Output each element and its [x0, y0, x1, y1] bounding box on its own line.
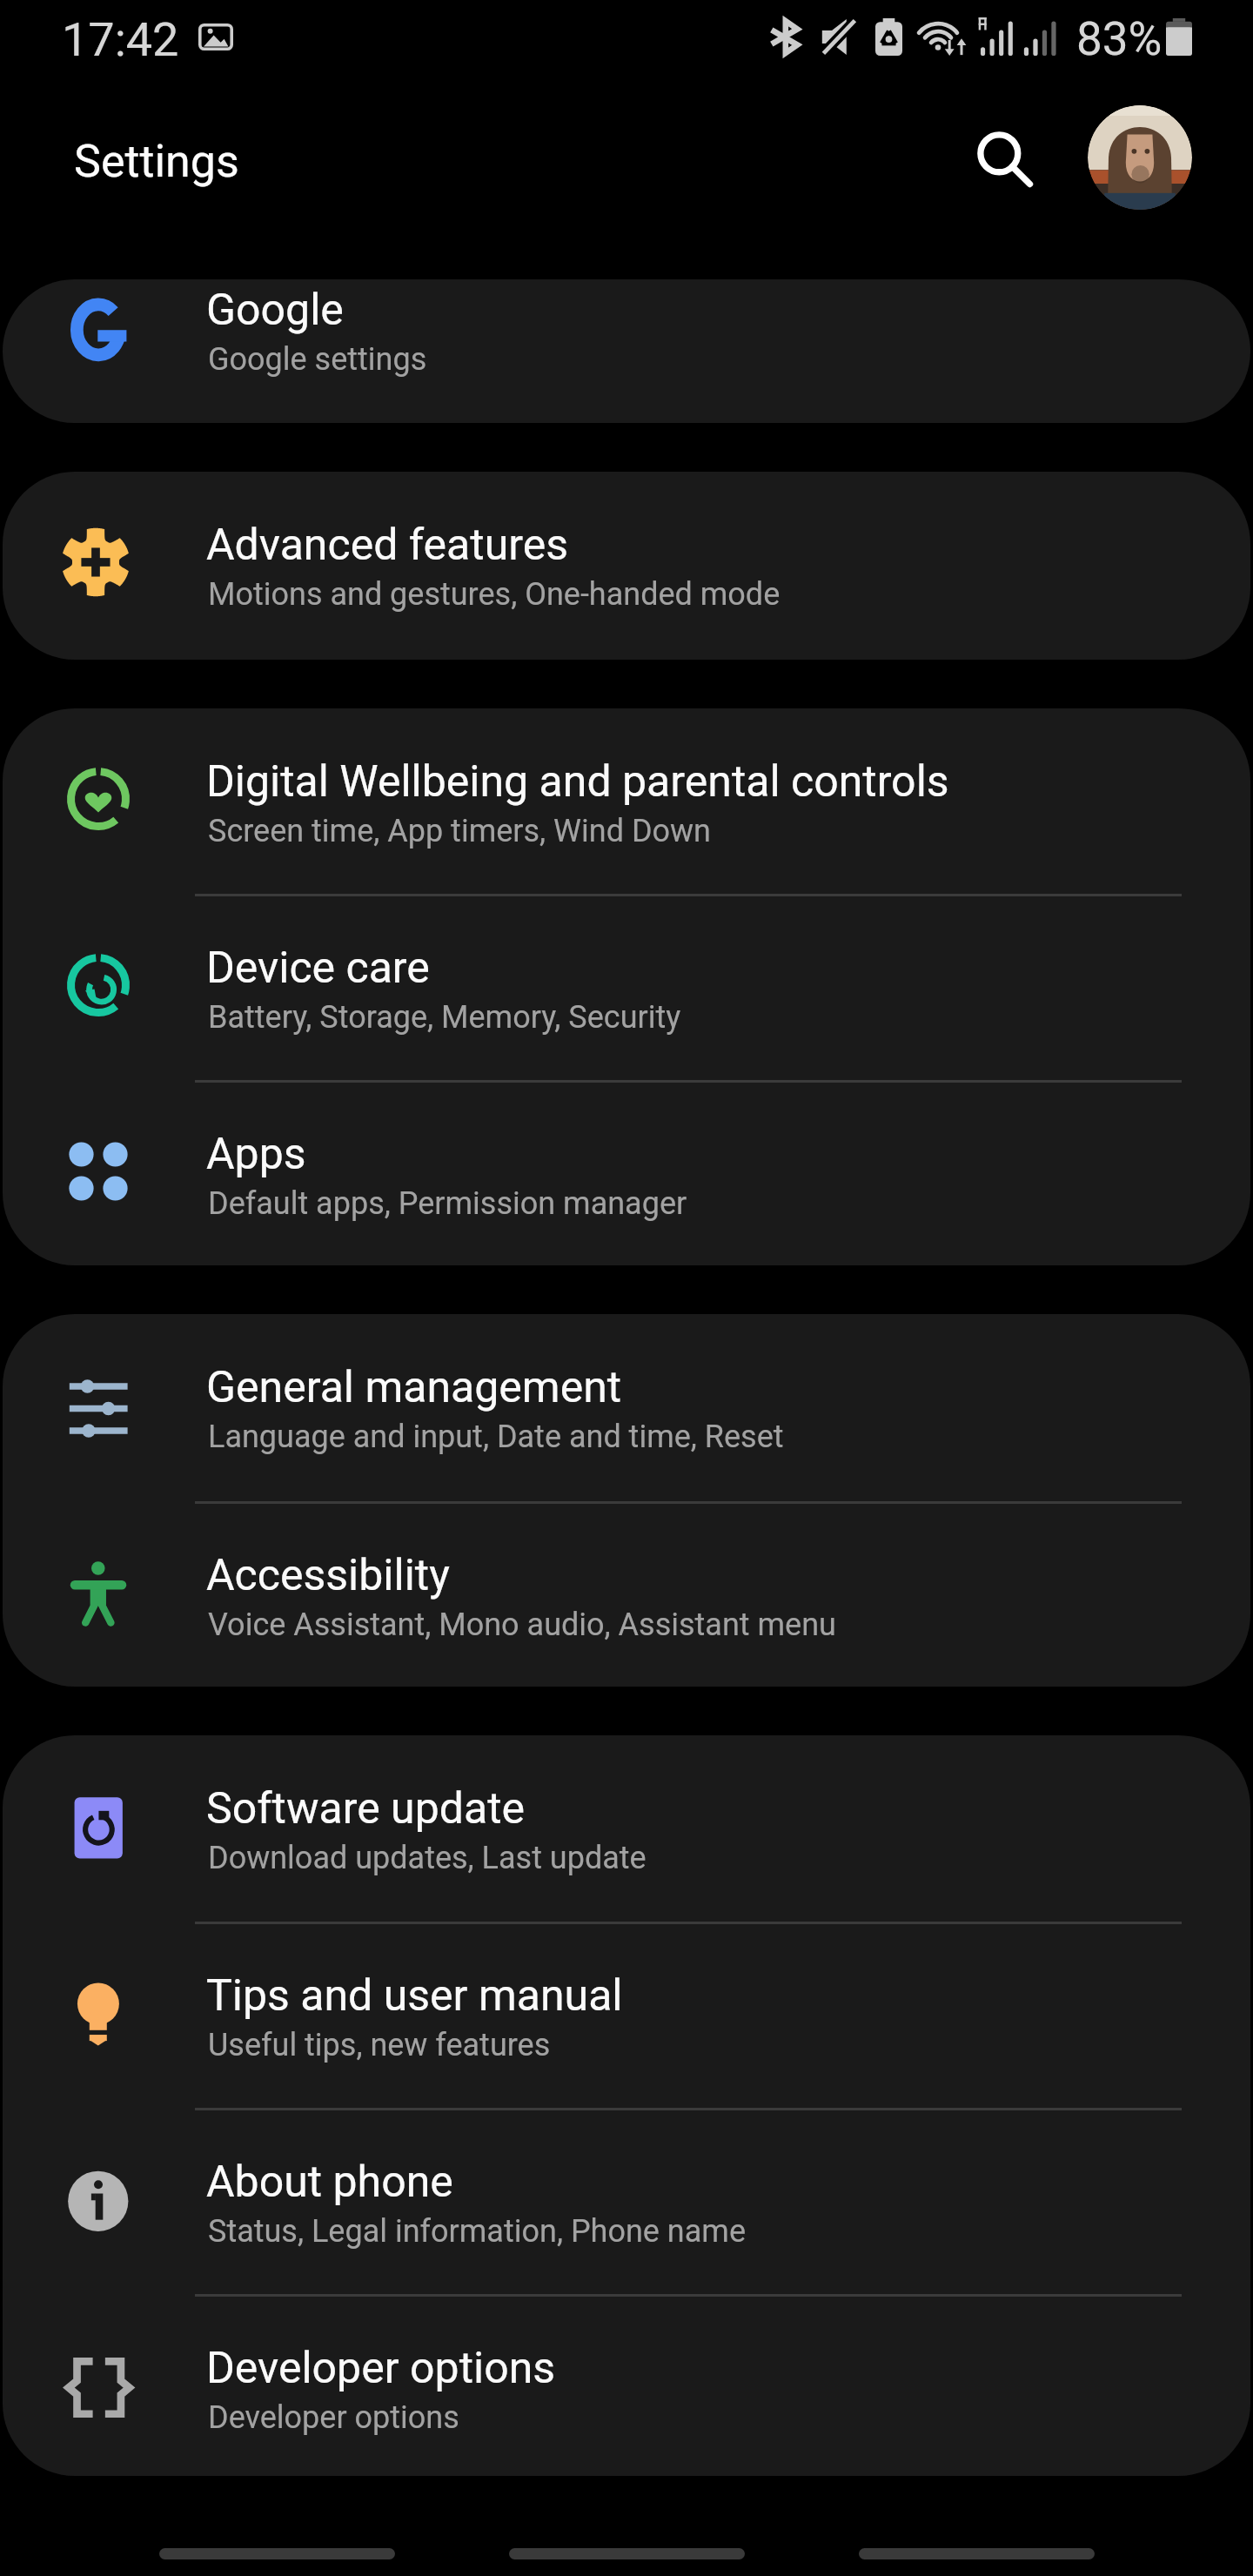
button[interactable]: Search [955, 109, 1057, 211]
button[interactable]: Home [479, 2489, 774, 2576]
button[interactable]: Software update [3, 1735, 1250, 1922]
staticText: Default apps, Permission manager [208, 1185, 687, 1222]
button[interactable]: Recent apps [129, 2489, 425, 2576]
button[interactable]: Account [1088, 105, 1192, 210]
staticText: Useful tips, new features [208, 2027, 551, 2063]
staticText: Developer options [206, 2343, 556, 2394]
staticText: Language and input, Date and time, Reset [208, 1419, 784, 1455]
button[interactable]: Device care [3, 895, 1250, 1081]
staticText: Voice Assistant, Mono audio, Assistant m… [208, 1607, 836, 1643]
button[interactable]: Advanced features [3, 472, 1250, 660]
staticText: Download updates, Last update [208, 1840, 647, 1876]
staticText: Battery, Storage, Memory, Security [208, 999, 681, 1036]
staticText: Google [206, 285, 344, 336]
button[interactable]: Apps [3, 1081, 1250, 1265]
staticText: 83% [1076, 12, 1163, 66]
button[interactable]: General management [3, 1314, 1250, 1502]
staticText: Google settings [208, 341, 427, 378]
button[interactable]: Accessibility [3, 1502, 1250, 1687]
button[interactable]: Digital Wellbeing and parental controls [3, 708, 1250, 895]
staticText: General management [206, 1362, 622, 1413]
button[interactable]: Back [828, 2489, 1124, 2576]
staticText: 17:42 [62, 12, 179, 67]
staticText: Motions and gestures, One-handed mode [208, 576, 781, 613]
staticText: Apps [206, 1129, 306, 1180]
staticText: About phone [206, 2157, 453, 2208]
button[interactable]: About phone [3, 2109, 1250, 2295]
staticText: Digital Wellbeing and parental controls [206, 756, 949, 808]
button[interactable]: Tips and user manual [3, 1922, 1250, 2109]
staticText: Settings [74, 135, 239, 188]
staticText: Status, Legal information, Phone name [208, 2213, 746, 2250]
staticText: Tips and user manual [206, 1970, 623, 2022]
staticText: Developer options [208, 2399, 459, 2436]
staticText: Accessibility [206, 1550, 450, 1601]
staticText: Device care [206, 943, 430, 994]
staticText: Screen time, App timers, Wind Down [208, 813, 712, 849]
staticText: Software update [206, 1783, 526, 1835]
button[interactable]: Developer options [3, 2295, 1250, 2476]
button[interactable]: Google [3, 279, 1250, 423]
staticText: Advanced features [206, 520, 568, 571]
